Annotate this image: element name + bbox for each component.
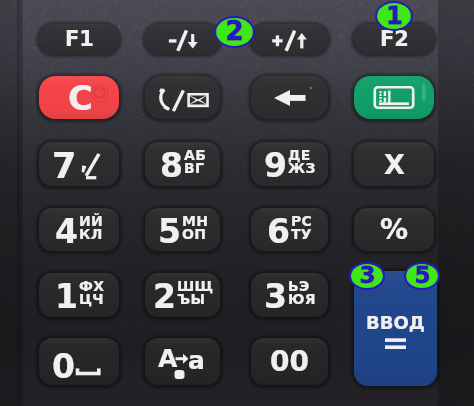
- button[interactable]: X: [354, 142, 434, 186]
- button[interactable]: 2: [145, 273, 220, 317]
- staticText: ОП: [182, 226, 207, 242]
- staticText: ИЙ: [79, 213, 104, 229]
- staticText: МН: [182, 213, 209, 229]
- staticText: 5: [158, 212, 181, 250]
- staticText: 2: [153, 277, 176, 315]
- button[interactable]: 0: [39, 338, 119, 385]
- button[interactable]: F2: [354, 24, 434, 54]
- staticText: КЛ: [79, 226, 103, 242]
- staticText: 5: [414, 262, 431, 289]
- button[interactable]: Call or mail: [145, 76, 220, 119]
- button[interactable]: F1: [39, 24, 119, 54]
- staticText: 0: [52, 347, 75, 385]
- button[interactable]: 4: [39, 208, 119, 251]
- staticText: ЬЭ: [288, 278, 310, 294]
- staticText: 1: [55, 277, 78, 315]
- staticText: ВГ: [184, 160, 205, 176]
- staticText: A: [158, 344, 178, 373]
- staticText: ЦЧ: [79, 291, 104, 307]
- staticText: C: [68, 78, 93, 118]
- staticText: ДЕ: [288, 147, 311, 163]
- button[interactable]: 1: [39, 273, 119, 317]
- button[interactable]: Double zero: [251, 338, 328, 385]
- staticText: РС: [291, 213, 313, 229]
- staticText: ЪЫ: [177, 291, 206, 307]
- staticText: 00: [270, 345, 309, 378]
- staticText: F1: [65, 27, 94, 51]
- button[interactable]: 3: [251, 273, 328, 317]
- button[interactable]: 6: [251, 208, 328, 251]
- staticText: 9: [264, 146, 287, 184]
- staticText: 7: [52, 146, 77, 187]
- staticText: F2: [380, 27, 409, 51]
- staticText: %: [380, 213, 409, 246]
- staticText: ВВОД: [366, 312, 425, 333]
- staticText: АБ: [184, 147, 207, 163]
- staticText: 8: [160, 146, 183, 184]
- staticText: 6: [267, 212, 290, 250]
- staticText: ТУ: [291, 226, 312, 242]
- staticText: 3: [264, 277, 287, 315]
- staticText: 3: [359, 262, 376, 289]
- staticText: ШЩ: [177, 278, 214, 294]
- staticText: 4: [55, 212, 78, 250]
- button[interactable]: 9: [251, 142, 328, 186]
- button[interactable]: Minus down: [145, 24, 220, 54]
- staticText: X: [384, 149, 405, 180]
- button[interactable]: 8: [145, 142, 220, 186]
- button[interactable]: 7: [39, 142, 119, 186]
- staticText: 2: [225, 16, 244, 46]
- button[interactable]: Enter: [354, 271, 437, 386]
- button[interactable]: Plus up: [251, 24, 328, 54]
- button[interactable]: Clear: [39, 76, 119, 119]
- button[interactable]: Percent: [354, 208, 434, 251]
- staticText: ФХ: [79, 278, 105, 294]
- staticText: 1: [386, 1, 403, 29]
- staticText: ЮЯ: [288, 291, 316, 307]
- button[interactable]: Card: [354, 76, 434, 119]
- button[interactable]: Backspace: [251, 76, 328, 119]
- staticText: a: [188, 346, 205, 375]
- button[interactable]: Change letter case: [145, 338, 220, 385]
- button[interactable]: 5: [145, 208, 220, 251]
- staticText: ЖЗ: [288, 160, 316, 176]
